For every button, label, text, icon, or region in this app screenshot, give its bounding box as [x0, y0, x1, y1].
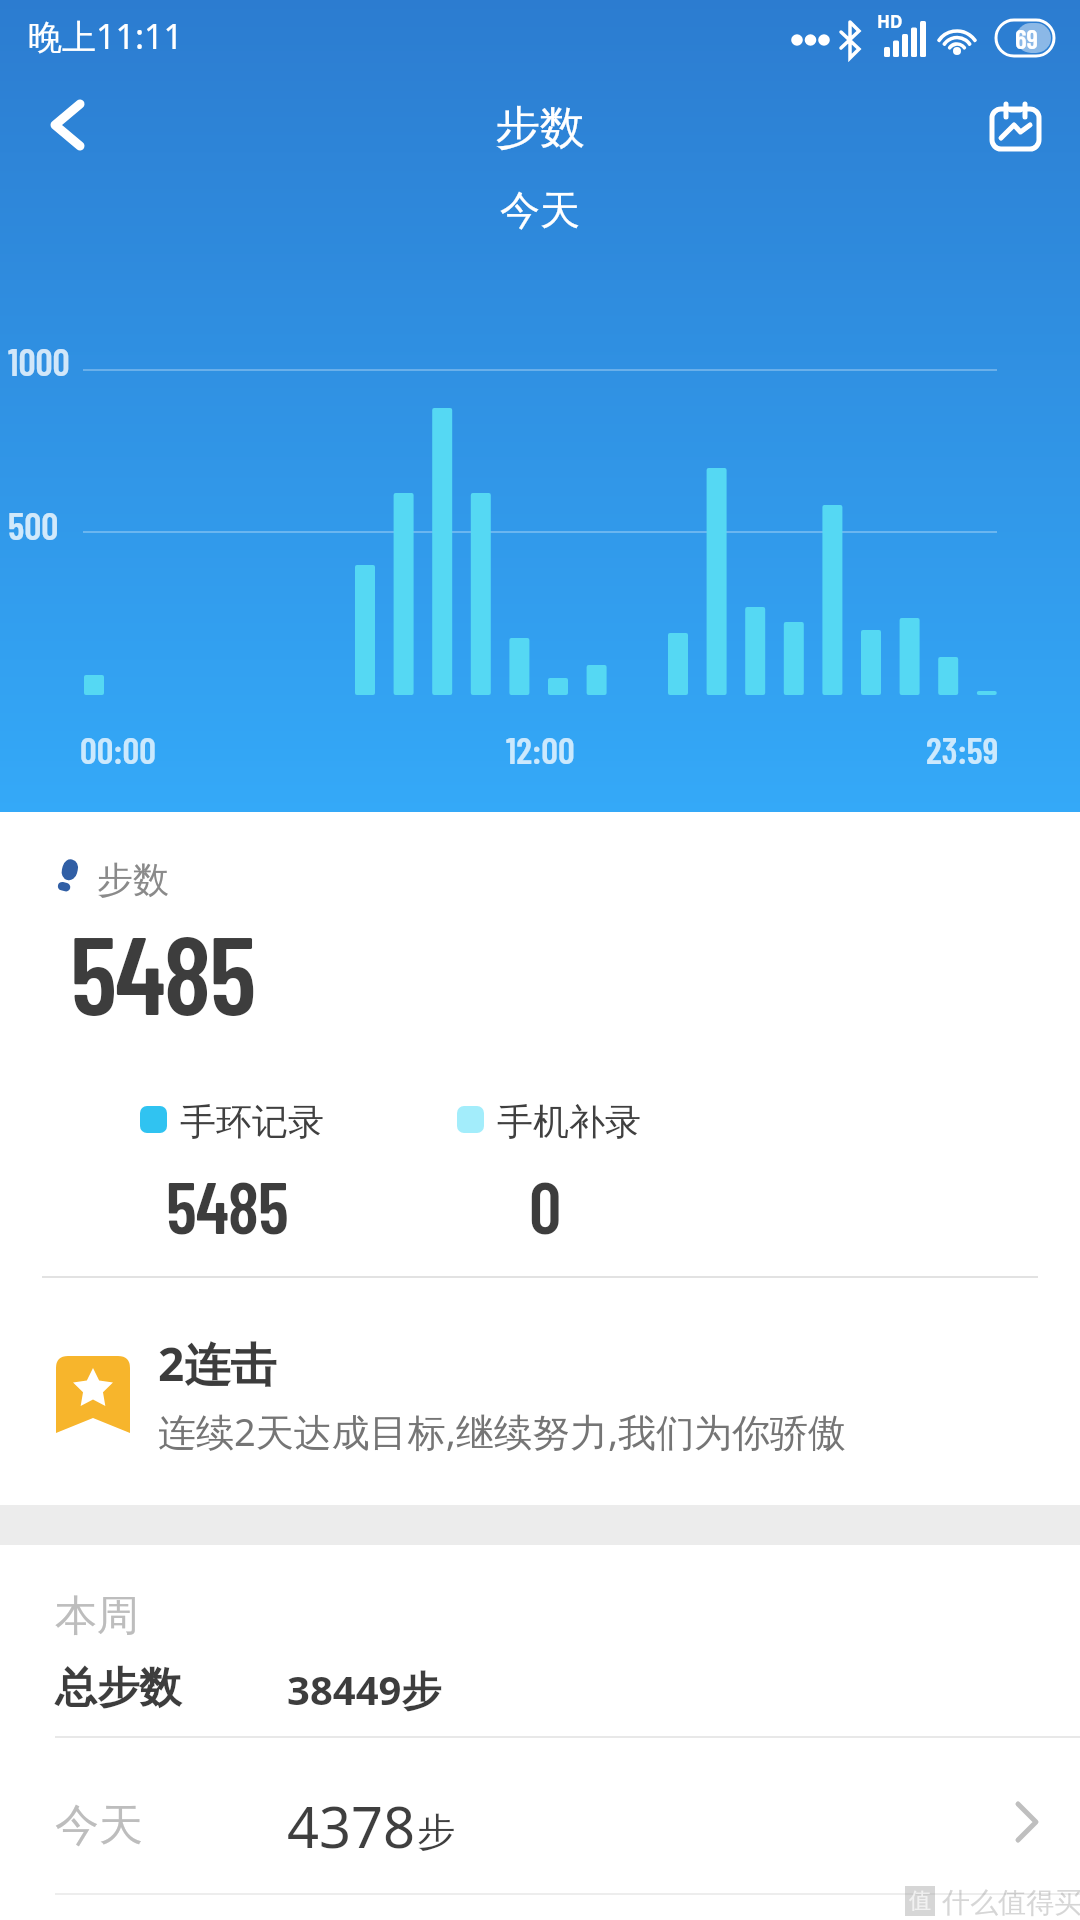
staticText: 值 [909, 1887, 931, 1915]
staticText: 什么值得买 [935, 1882, 1080, 1920]
staticText: 今天 [55, 1798, 143, 1853]
staticText: 手环记录 [180, 1099, 324, 1144]
staticText: 12:00 [506, 727, 575, 771]
staticText: 500 [8, 502, 59, 548]
staticText: 4378 [287, 1788, 416, 1864]
button[interactable] [35, 95, 95, 155]
staticText: 69 [1015, 22, 1039, 54]
staticText: 步数 [0, 100, 1080, 157]
staticText: 23:59 [926, 727, 999, 771]
button[interactable]: 今天 [0, 1760, 1080, 1885]
staticText: 1000 [8, 338, 70, 384]
staticText: 00:00 [80, 727, 156, 771]
staticText: 本周 [55, 1590, 139, 1643]
staticText: HD [877, 10, 903, 33]
staticText: 今天 [0, 185, 1080, 235]
staticText: 步数 [97, 857, 169, 902]
staticText: 38449步 [287, 1662, 442, 1717]
staticText: 连续2天达成目标,继续努力,我们为你骄傲 [158, 1405, 847, 1457]
staticText: 2连击 [158, 1332, 277, 1395]
staticText: 总步数 [55, 1662, 181, 1715]
staticText: 0 [529, 1162, 562, 1248]
staticText: 晚上11:11 [28, 13, 183, 59]
staticText: 5485 [166, 1162, 288, 1248]
staticText: 步 [417, 1808, 455, 1856]
staticText: 手机补录 [497, 1099, 641, 1144]
button[interactable] [978, 95, 1052, 165]
staticText: 5485 [70, 905, 255, 1037]
